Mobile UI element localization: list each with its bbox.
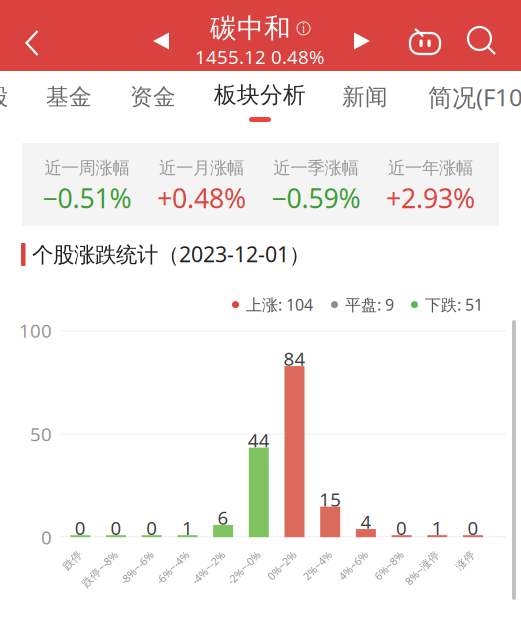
staticText: -2%~-0% <box>217 546 259 560</box>
staticText: 4%~6% <box>330 546 366 560</box>
button[interactable]: 简况(F10) <box>424 75 521 119</box>
button[interactable]: 近一年涨幅 <box>371 143 490 226</box>
button[interactable]: 近一周涨幅 <box>27 143 146 226</box>
button[interactable]: AI assistant <box>401 13 449 69</box>
staticText: 上涨: 104 <box>246 294 313 315</box>
staticText: 100 <box>19 318 52 343</box>
staticText: 0 <box>75 515 86 540</box>
button[interactable]: 近一季涨幅 <box>256 143 375 226</box>
staticText: 个股涨跌统计（2023-12-01） <box>32 240 310 268</box>
button[interactable]: 板块分析 <box>204 71 316 127</box>
staticText: 近一月涨幅 <box>159 157 244 179</box>
button[interactable]: 新闻 <box>325 75 405 119</box>
staticText: -6%~-4% <box>145 546 187 560</box>
staticText: 近一年涨幅 <box>388 157 473 179</box>
button[interactable]: Previous sector <box>139 13 183 69</box>
staticText: 0 <box>396 515 407 540</box>
staticText: 1455.12 0.48% <box>195 44 325 69</box>
staticText: 4 <box>360 509 371 534</box>
staticText: 6%~8% <box>366 546 402 560</box>
staticText: 0 <box>146 515 157 540</box>
staticText: 0 <box>41 525 52 550</box>
button[interactable]: Search <box>458 13 506 69</box>
staticText: −0.59% <box>271 180 360 216</box>
staticText: −0.51% <box>42 180 131 216</box>
staticText: 15 <box>319 487 341 511</box>
staticText: 8%~涨停 <box>394 546 437 560</box>
staticText: 2%~4% <box>294 546 330 560</box>
button[interactable]: 基金 <box>29 75 109 119</box>
staticText: -8%~-6% <box>110 546 152 560</box>
button[interactable]: 股 <box>0 75 14 119</box>
staticText: -4%~-2% <box>181 546 223 560</box>
staticText: 0%~2% <box>258 546 294 560</box>
staticText: 平盘: 9 <box>345 294 394 315</box>
staticText: 新闻 <box>342 83 388 111</box>
staticText: 44 <box>248 428 270 452</box>
staticText: i <box>302 20 305 36</box>
button[interactable]: 资金 <box>113 75 193 119</box>
staticText: 1 <box>182 515 193 540</box>
staticText: +0.48% <box>157 180 246 216</box>
staticText: 资金 <box>130 83 176 111</box>
staticText: 基金 <box>46 83 92 111</box>
staticText: 84 <box>283 346 305 371</box>
button[interactable]: Next sector <box>340 13 384 69</box>
staticText: +2.93% <box>386 180 475 216</box>
button[interactable]: 近一月涨幅 <box>142 143 261 226</box>
staticText: 近一周涨幅 <box>44 157 129 179</box>
staticText: 板块分析 <box>214 81 306 109</box>
staticText: 0 <box>467 515 478 540</box>
staticText: 0 <box>110 515 121 540</box>
staticText: 碳中和 <box>210 12 291 45</box>
staticText: 简况(F10) <box>428 81 521 113</box>
staticText: 1 <box>432 515 443 540</box>
staticText: 下跌: 51 <box>425 294 483 315</box>
staticText: 6 <box>218 505 229 530</box>
staticText: 股 <box>0 83 8 111</box>
button[interactable]: Back <box>7 15 57 71</box>
staticText: 跌停 <box>58 546 80 559</box>
staticText: 50 <box>30 422 52 446</box>
staticText: 跌停~-8% <box>70 546 116 560</box>
staticText: 近一季涨幅 <box>273 157 358 179</box>
staticText: 涨停 <box>451 546 473 559</box>
